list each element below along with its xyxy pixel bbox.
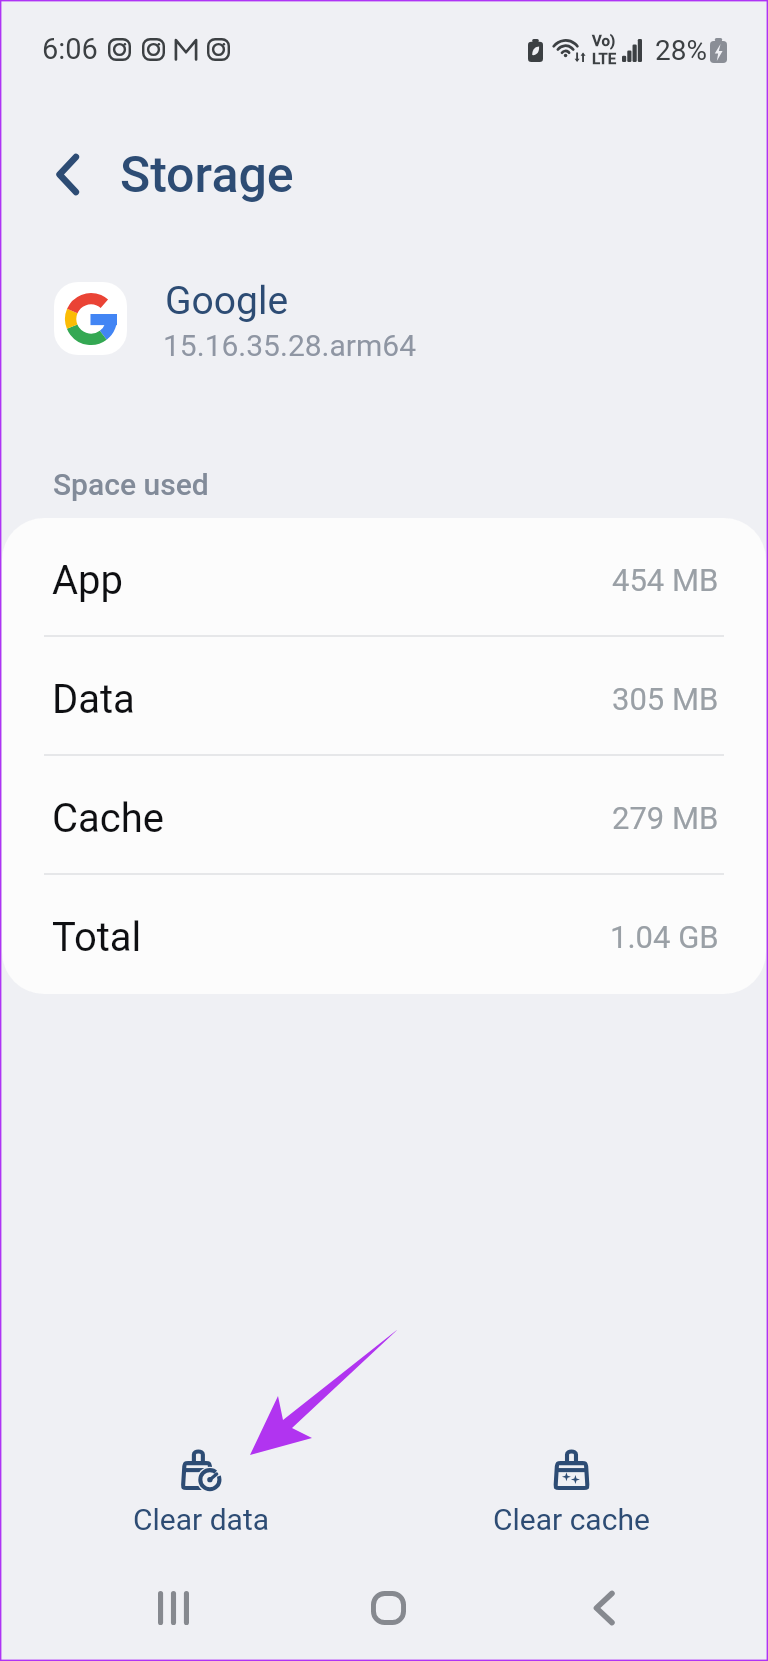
staticText: Total <box>52 914 142 961</box>
staticText: Cache <box>52 795 164 842</box>
staticText: Clear data <box>133 1502 270 1537</box>
staticText: 28% <box>655 34 707 67</box>
staticText: Space used <box>53 467 209 502</box>
staticText: 454 MB <box>612 562 719 598</box>
staticText: Data <box>52 676 135 723</box>
button[interactable]: Total <box>2 875 766 994</box>
button[interactable]: Back <box>536 1568 672 1648</box>
staticText: Vo) <box>592 32 616 50</box>
button[interactable]: Home <box>320 1568 456 1648</box>
staticText: Clear cache <box>493 1502 650 1537</box>
staticText: 305 MB <box>612 681 719 717</box>
staticText: App <box>52 557 124 604</box>
button[interactable]: Clear cache <box>489 1445 654 1543</box>
staticText: Storage <box>120 146 294 205</box>
button[interactable]: App <box>2 518 766 637</box>
staticText: Google <box>165 278 289 324</box>
staticText: LTE <box>592 50 617 68</box>
button[interactable]: Recent apps <box>105 1568 241 1648</box>
button[interactable]: Clear data <box>126 1445 276 1543</box>
staticText: 1.04 GB <box>610 919 719 955</box>
button[interactable]: Data <box>2 637 766 756</box>
button[interactable]: Cache <box>2 756 766 875</box>
staticText: 15.16.35.28.arm64 <box>163 328 417 363</box>
button[interactable]: Back <box>36 143 98 205</box>
staticText: 279 MB <box>612 800 719 836</box>
staticText: 6:06 <box>42 32 98 66</box>
